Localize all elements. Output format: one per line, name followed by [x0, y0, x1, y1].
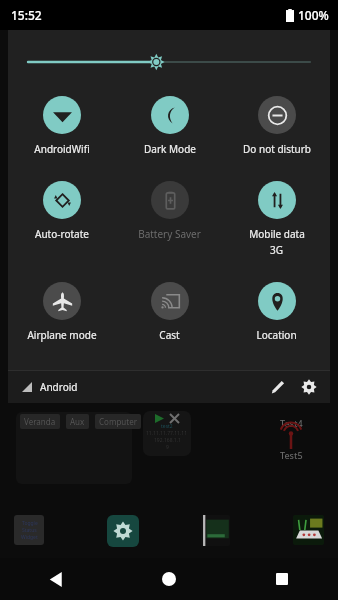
button[interactable]: Recents — [225, 558, 338, 600]
button[interactable]: Do not disturb — [223, 94, 330, 158]
staticText: 3G — [270, 243, 283, 257]
staticText: Toggle — [22, 520, 38, 527]
staticText: Test5 — [280, 449, 303, 461]
staticText: Status — [22, 527, 37, 534]
button[interactable]: Auto-rotate — [8, 179, 116, 243]
button[interactable]: Mobile data — [223, 179, 330, 259]
staticText: Cast — [159, 328, 180, 342]
button[interactable]: Home — [112, 558, 225, 600]
staticText: Aux — [70, 416, 85, 427]
button[interactable]: AndroidWifi — [8, 94, 116, 158]
staticText: 9 — [166, 444, 169, 451]
staticText: Android — [40, 380, 78, 394]
staticText: 192.168.1.1 — [154, 437, 181, 444]
button[interactable]: Edit — [262, 372, 292, 402]
staticText: Test4 — [280, 417, 303, 429]
staticText: AndroidWifi — [34, 142, 90, 156]
staticText: Dark Mode — [144, 142, 196, 156]
staticText: Location — [256, 328, 297, 342]
button[interactable]: Cast — [116, 280, 223, 344]
staticText: Airplane mode — [27, 328, 97, 342]
staticText: Veranda — [24, 416, 56, 427]
staticText: 100% — [298, 7, 329, 23]
staticText: 11.11.11.77.11.11 — [146, 430, 188, 437]
staticText: test2 — [161, 423, 173, 430]
staticText: 15:52 — [11, 7, 42, 23]
staticText: Do not disturb — [243, 142, 311, 156]
button[interactable]: Settings — [294, 372, 324, 402]
button[interactable]: Android — [8, 374, 86, 400]
staticText: Computer — [99, 416, 137, 427]
button[interactable]: Dark Mode — [116, 94, 223, 158]
button[interactable]: Location — [223, 280, 330, 344]
button[interactable]: Battery Saver — [116, 179, 223, 243]
staticText: Auto-rotate — [35, 227, 89, 241]
button[interactable]: Back — [0, 558, 112, 600]
button[interactable]: Airplane mode — [8, 280, 116, 344]
staticText: Widget — [21, 534, 38, 541]
staticText: Mobile data — [249, 227, 305, 241]
staticText: Battery Saver — [138, 227, 201, 241]
